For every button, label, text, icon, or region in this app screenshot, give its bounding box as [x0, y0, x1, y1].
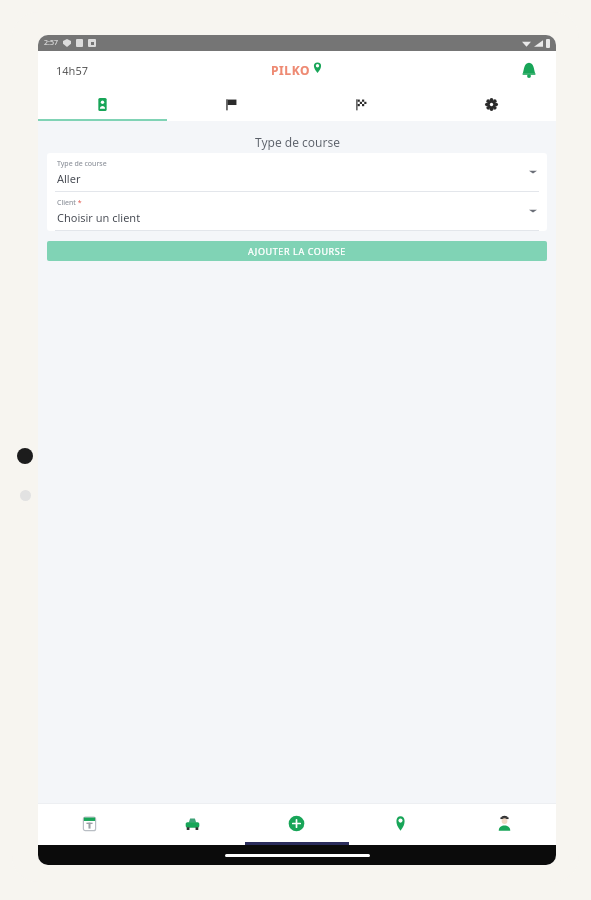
staticText: PILKO [271, 62, 311, 78]
staticText: Type de course [57, 159, 107, 169]
button[interactable]: Vehicules [141, 804, 244, 842]
staticText: * [76, 198, 82, 208]
staticText: Type de course [255, 134, 340, 150]
staticText: Choisir un client [57, 210, 141, 225]
button[interactable]: Chauffeur [452, 804, 556, 842]
button[interactable]: Type de course [47, 153, 547, 191]
staticText: Aller [57, 171, 81, 186]
button[interactable]: Notifications [516, 57, 542, 83]
button[interactable]: Planning [38, 804, 141, 842]
button[interactable]: Client [47, 192, 547, 230]
button[interactable]: Ajouter [244, 804, 348, 842]
staticText: 2:57 [44, 38, 58, 48]
staticText: Client [57, 198, 76, 208]
button[interactable]: Tab 3 [296, 89, 426, 119]
staticText: 14h57 [56, 63, 88, 78]
button[interactable]: Carte [348, 804, 452, 842]
button[interactable]: Tab 2 [167, 89, 296, 119]
staticText: AJOUTER LA COURSE [248, 245, 346, 257]
button[interactable]: Tab 4 [426, 89, 556, 119]
button[interactable]: AJOUTER LA COURSE [47, 241, 547, 261]
button[interactable]: Tab 1 [38, 89, 167, 119]
